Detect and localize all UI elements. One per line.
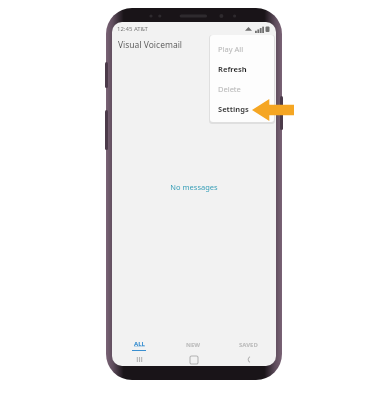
staticText: Refresh (218, 64, 247, 74)
button[interactable]: Delete (218, 79, 274, 99)
staticText: No messages (112, 182, 276, 192)
button[interactable]: Play All (218, 39, 274, 59)
button[interactable]: Recent apps (112, 353, 166, 366)
button[interactable]: Settings (218, 99, 274, 119)
staticText: ALL (134, 340, 145, 348)
staticText: SAVED (239, 341, 258, 349)
button[interactable]: ALL (112, 337, 166, 353)
button[interactable]: SAVED (221, 337, 276, 353)
button[interactable]: NEW (166, 337, 221, 353)
staticText: Delete (218, 84, 241, 94)
button[interactable]: Home (166, 353, 221, 366)
button[interactable]: Refresh (218, 59, 274, 79)
staticText: Visual Voicemail (118, 39, 183, 51)
staticText: Settings (218, 104, 249, 114)
staticText: Play All (218, 44, 244, 54)
button[interactable]: Back (221, 353, 276, 366)
staticText: NEW (186, 341, 201, 349)
staticText: 12:45 AT&T (117, 25, 148, 33)
